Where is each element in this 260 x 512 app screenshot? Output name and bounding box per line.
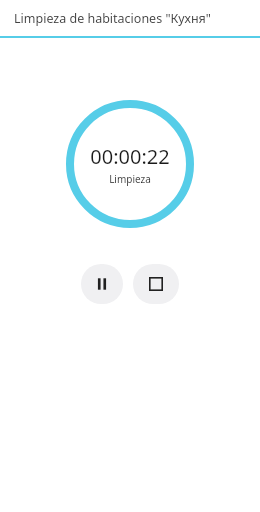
staticText: Limpieza de habitaciones "Кухня" xyxy=(14,10,211,27)
button[interactable]: Stop xyxy=(133,264,179,304)
staticText: 00:00:22 xyxy=(90,143,170,170)
staticText: Limpieza xyxy=(109,172,151,186)
button[interactable]: Pause xyxy=(81,264,123,304)
